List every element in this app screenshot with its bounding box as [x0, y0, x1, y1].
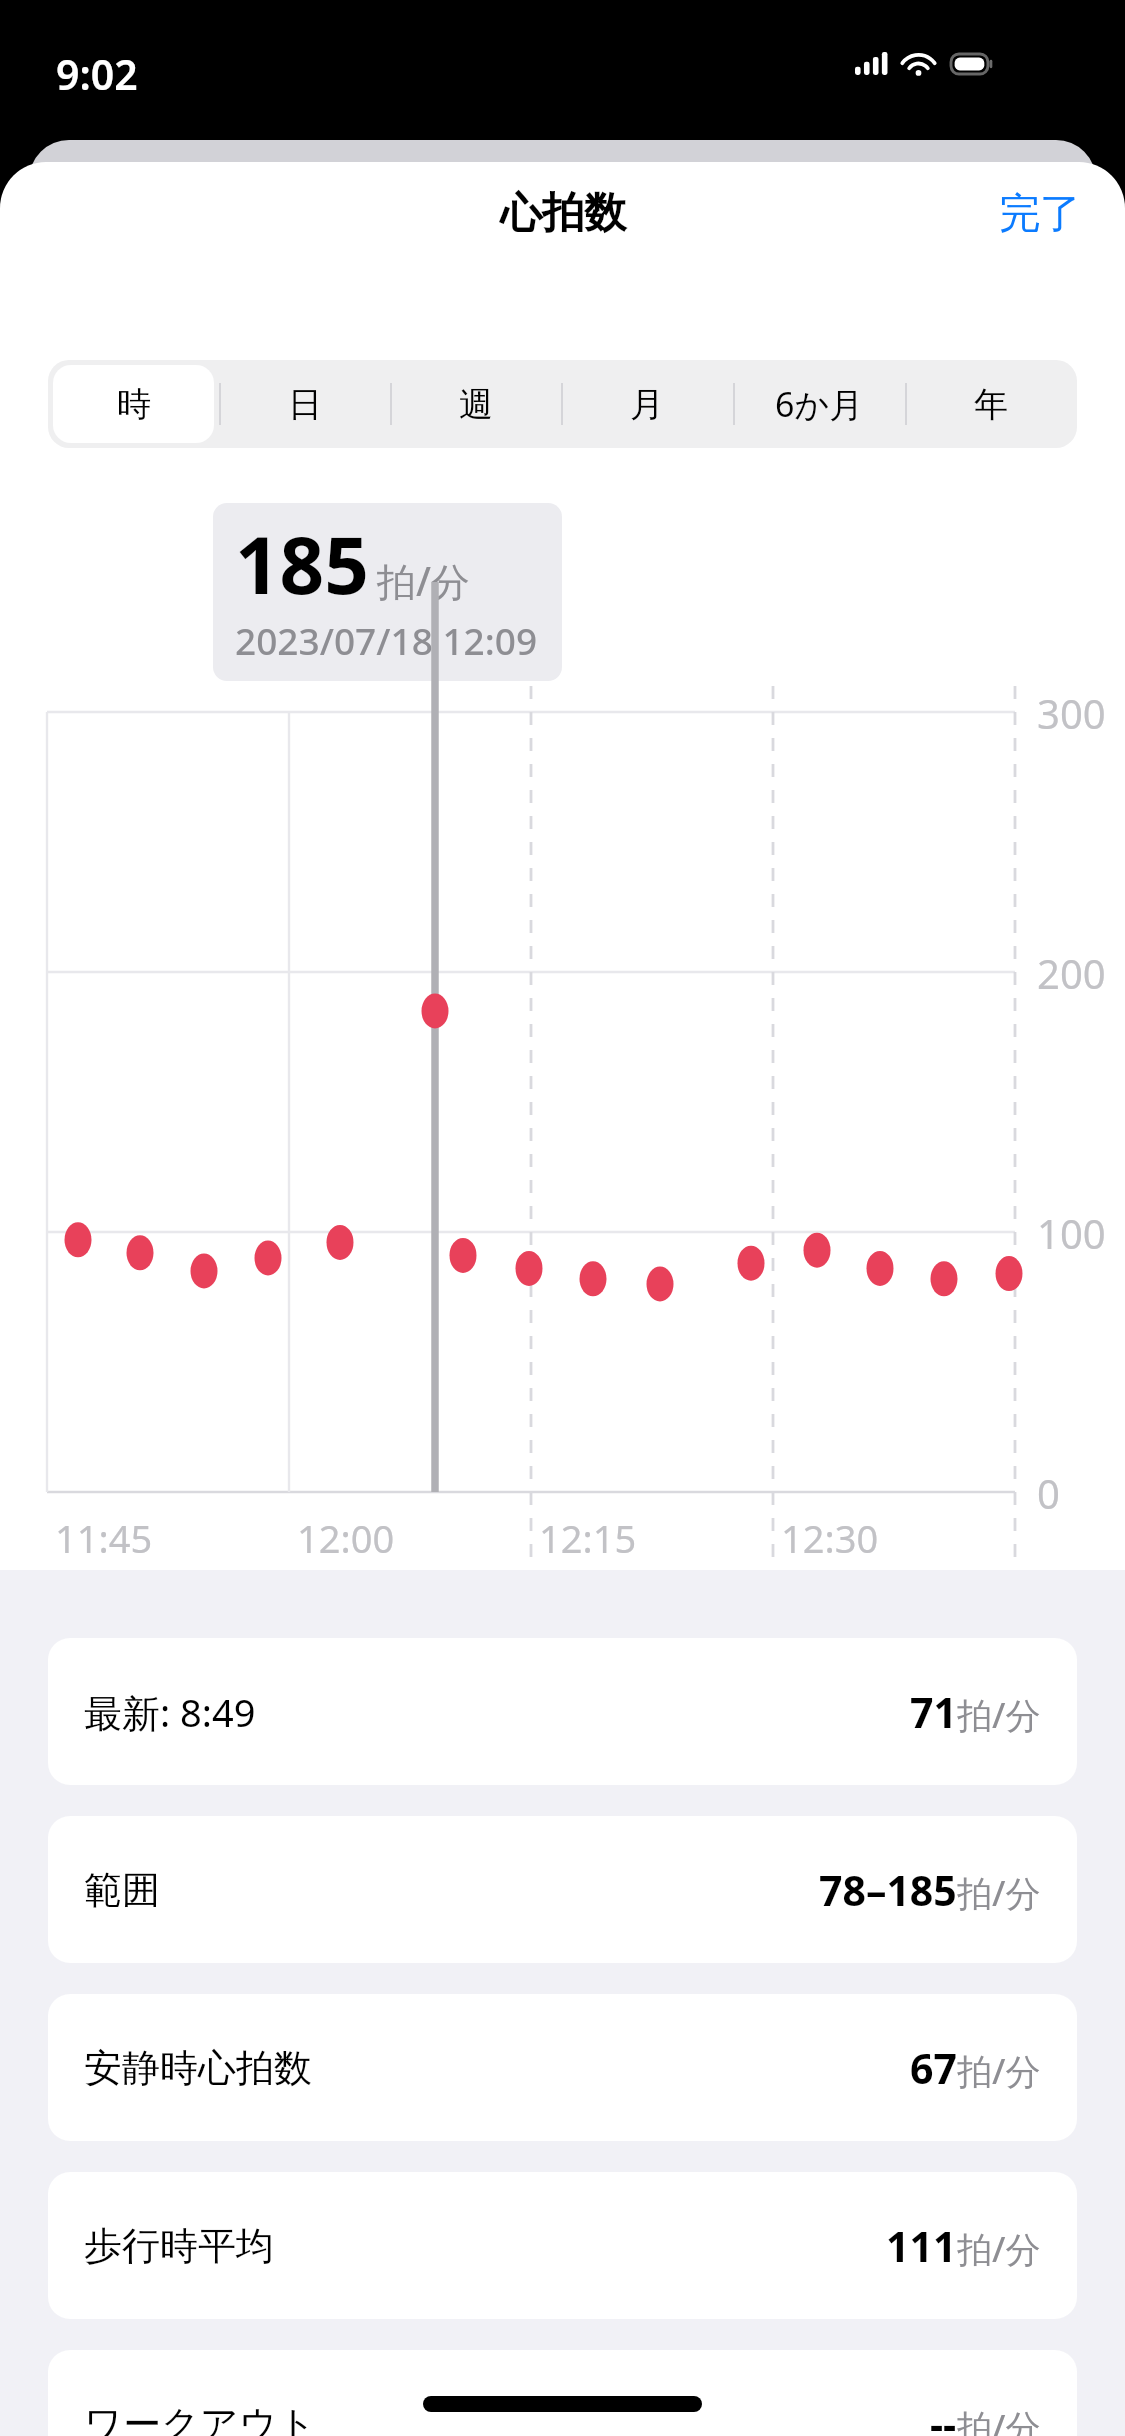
staticText: ワークアウト: [84, 2400, 317, 2436]
staticText: 時: [117, 383, 151, 426]
staticText: 100: [1037, 1206, 1106, 1260]
button[interactable]: 範囲: [48, 1816, 1077, 1963]
staticText: 歩行時平均: [84, 2222, 274, 2270]
staticText: 111: [886, 2218, 957, 2274]
staticText: 12:15: [539, 1512, 637, 1564]
staticText: 年: [974, 383, 1008, 426]
button[interactable]: 安静時心拍数: [48, 1994, 1077, 2141]
staticText: 200: [1037, 946, 1106, 1000]
staticText: 185: [235, 511, 369, 617]
button[interactable]: 完了: [955, 174, 1125, 254]
button[interactable]: ワークアウト: [48, 2350, 1077, 2436]
staticText: 6か月: [775, 381, 864, 427]
staticText: 2023/07/18 12:09: [235, 615, 538, 665]
staticText: 範囲: [84, 1866, 160, 1914]
button[interactable]: 歩行時平均: [48, 2172, 1077, 2319]
staticText: 完了: [999, 188, 1081, 240]
button[interactable]: 時: [48, 360, 219, 448]
staticText: 9:02: [56, 46, 138, 102]
staticText: 週: [459, 383, 493, 426]
staticText: --: [930, 2396, 957, 2436]
staticText: 67: [910, 2040, 957, 2096]
staticText: 拍/分: [957, 2047, 1041, 2095]
staticText: 12:00: [297, 1512, 395, 1564]
staticText: 拍/分: [957, 2403, 1041, 2436]
staticText: 12:30: [781, 1512, 879, 1564]
staticText: 安静時心拍数: [84, 2044, 312, 2092]
button[interactable]: 最新: 8:49: [48, 1638, 1077, 1785]
staticText: 日: [288, 383, 322, 426]
staticText: 拍/分: [957, 1869, 1041, 1917]
staticText: 最新: 8:49: [84, 1686, 256, 1738]
staticText: 78–185: [819, 1862, 957, 1918]
staticText: 月: [630, 383, 664, 426]
button[interactable]: 月: [561, 360, 733, 448]
staticText: 拍/分: [377, 554, 471, 607]
button[interactable]: 6か月: [733, 360, 905, 448]
staticText: 71: [910, 1684, 957, 1740]
button[interactable]: 日: [219, 360, 390, 448]
staticText: 心拍数: [500, 187, 626, 240]
button[interactable]: 年: [905, 360, 1077, 448]
other: Home indicator: [423, 2396, 702, 2412]
staticText: 300: [1037, 686, 1106, 740]
button[interactable]: 週: [390, 360, 561, 448]
staticText: 拍/分: [957, 1691, 1041, 1739]
staticText: 0: [1037, 1466, 1060, 1520]
staticText: 11:45: [55, 1512, 153, 1564]
staticText: 拍/分: [957, 2225, 1041, 2273]
